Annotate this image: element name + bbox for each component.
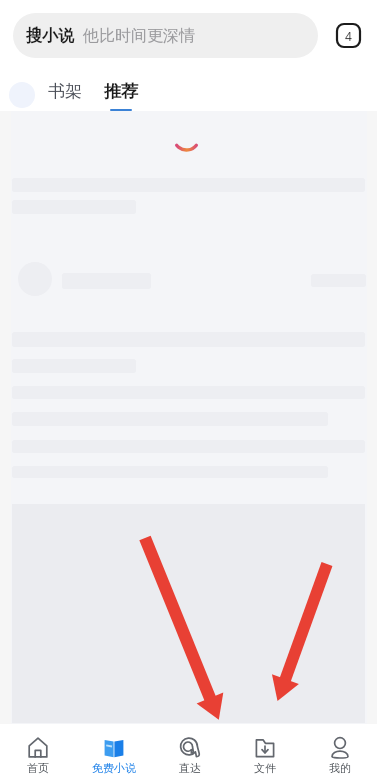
staticText: 书架: [48, 81, 82, 102]
button[interactable]: 搜小说: [13, 13, 318, 58]
staticText: 文件: [254, 761, 276, 775]
staticText: 直达: [179, 761, 201, 775]
staticText: 搜小说: [26, 26, 74, 46]
button[interactable]: 直达: [152, 727, 227, 775]
button[interactable]: 书架: [45, 81, 85, 102]
button[interactable]: 免费小说: [76, 727, 152, 775]
staticText: 推荐: [104, 81, 138, 102]
staticText: 首页: [27, 761, 49, 775]
staticText: 免费小说: [92, 761, 136, 775]
button[interactable]: 窗口数 4: [336, 23, 361, 48]
staticText: 我的: [329, 761, 351, 775]
button[interactable]: 我的: [302, 727, 377, 775]
button[interactable]: 文件: [227, 727, 302, 775]
staticText: 他比时间更深情: [83, 26, 195, 46]
staticText: 4: [345, 28, 352, 44]
button[interactable]: 头像: [9, 82, 35, 108]
button[interactable]: 推荐: [101, 81, 141, 111]
button[interactable]: 首页: [0, 727, 76, 775]
